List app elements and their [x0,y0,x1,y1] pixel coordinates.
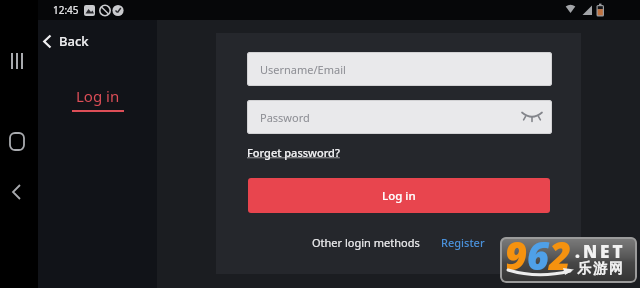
staticText: .NET [575,240,626,263]
staticText: Back [59,32,89,50]
staticText: 12:45 [53,3,79,17]
button[interactable]: Log in [248,178,550,213]
button[interactable]: Forget password? [247,145,340,160]
button[interactable]: Back [40,30,92,52]
staticText: 962 [505,237,572,275]
button[interactable] [6,48,32,74]
staticText: Username/Email [260,62,346,77]
button[interactable]: Password [247,100,552,134]
button[interactable] [6,128,32,154]
staticText: Log in [382,188,416,204]
button[interactable]: Register [441,235,485,250]
button[interactable]: Username/Email [247,52,552,86]
staticText: 乐游网 [576,260,624,278]
staticText: Password [260,110,310,125]
button[interactable] [6,179,32,205]
staticText: Log in [76,86,120,106]
staticText: Other login methods [312,235,420,250]
